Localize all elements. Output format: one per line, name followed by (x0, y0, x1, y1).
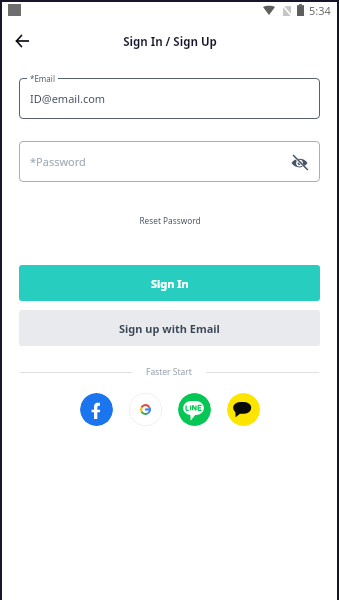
button[interactable]: Sign up with Email (19, 310, 320, 346)
staticText: ID@email.com (30, 91, 106, 106)
button[interactable]: ID@email.com (19, 78, 320, 119)
staticText: Sign up with Email (119, 321, 220, 336)
button[interactable]: Sign in with Google (129, 393, 162, 426)
button[interactable]: Sign In (19, 265, 320, 301)
button[interactable]: Show password (289, 152, 309, 172)
staticText: Sign In (151, 276, 189, 291)
staticText: Reset Password (139, 215, 201, 226)
staticText: 5:34 (309, 3, 331, 18)
button[interactable]: Sign in with Kakao (227, 393, 260, 426)
button[interactable]: Reset Password (0, 210, 339, 230)
button[interactable]: *Password (19, 141, 320, 182)
button[interactable]: Sign in with LINE (178, 393, 211, 426)
staticText: *Password (30, 154, 86, 169)
button[interactable]: Sign in with Facebook (80, 393, 113, 426)
button[interactable]: Back (4, 25, 36, 57)
staticText: *Email (30, 73, 55, 84)
staticText: Faster Start (146, 366, 192, 378)
staticText: Sign In / Sign Up (123, 34, 217, 50)
